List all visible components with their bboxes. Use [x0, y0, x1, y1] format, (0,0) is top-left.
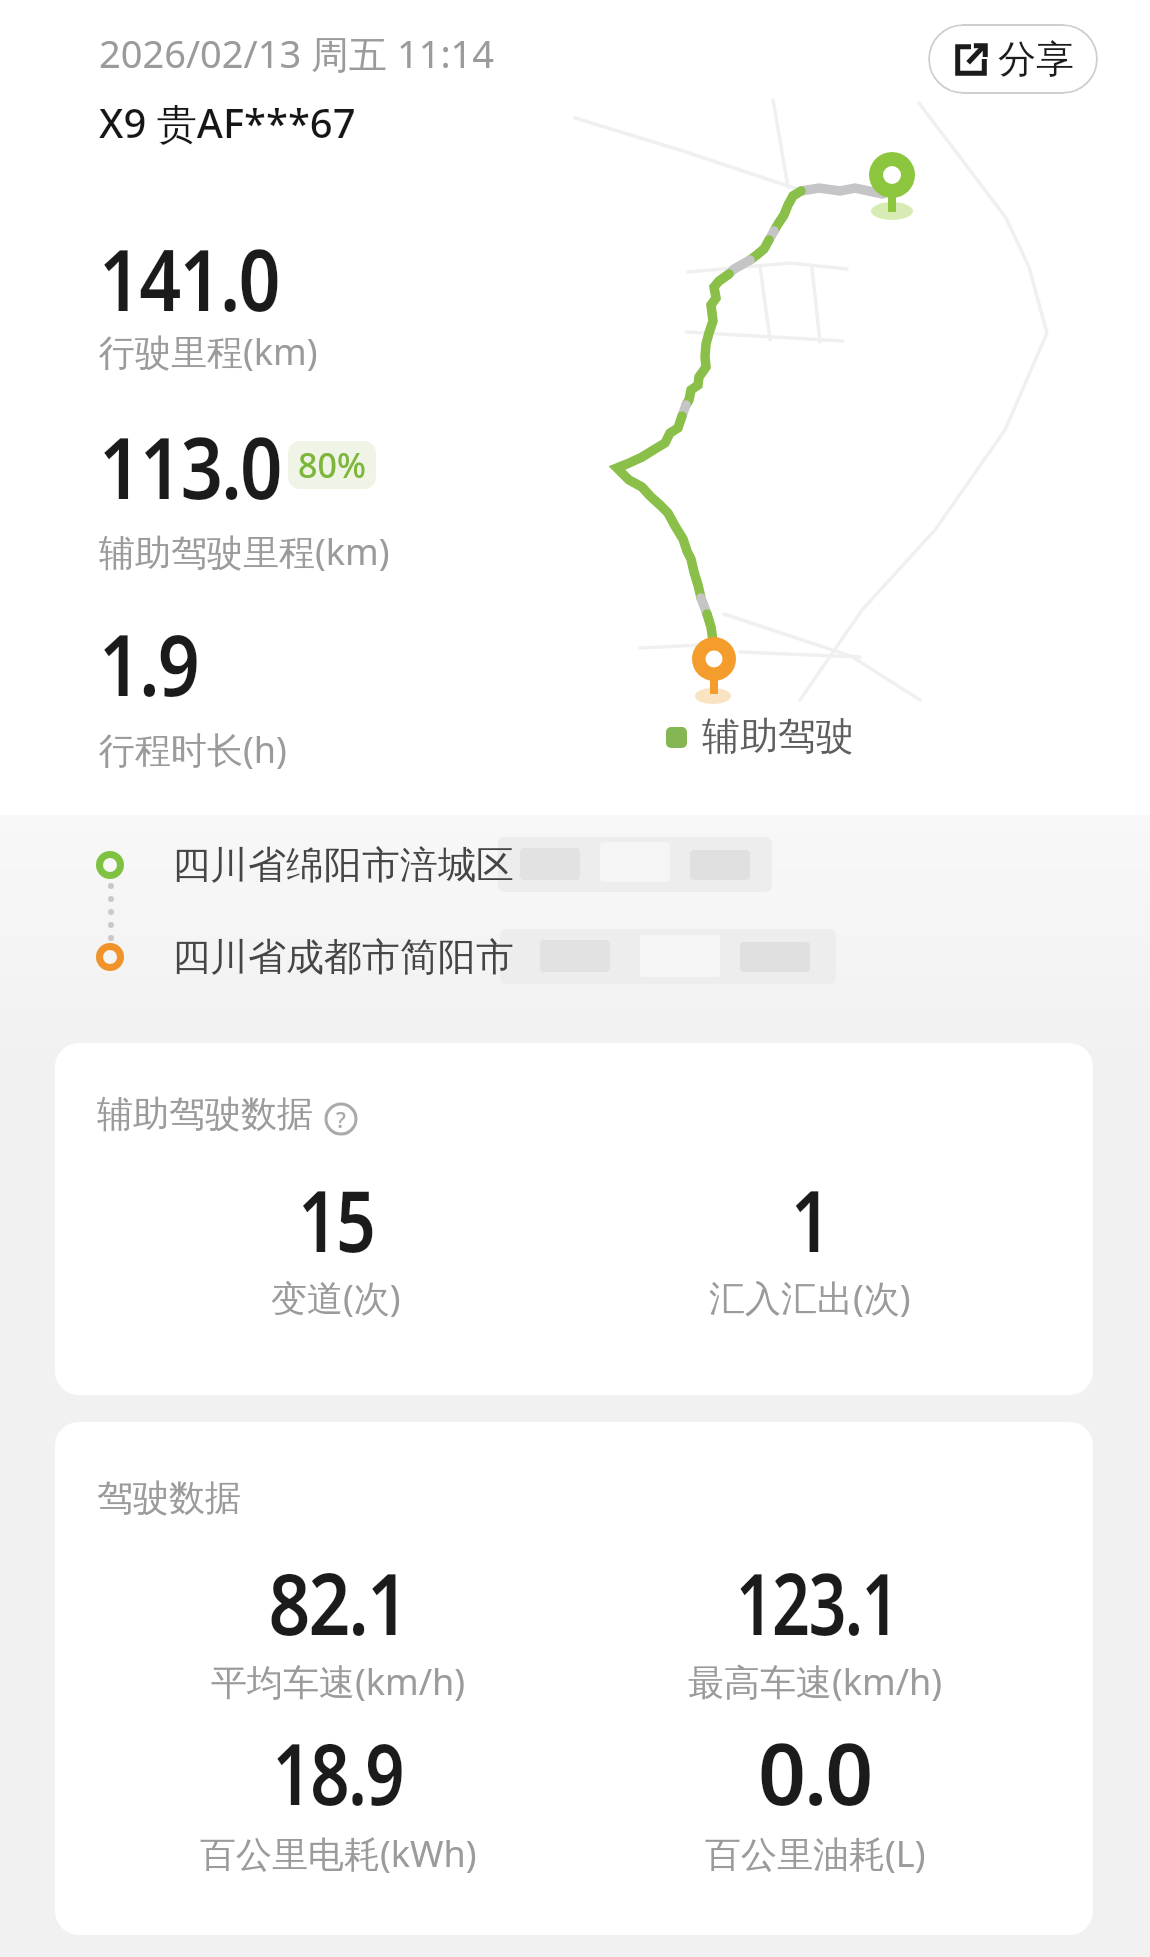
staticText: 15	[298, 1162, 375, 1276]
staticText: 辅助驾驶里程(km)	[99, 527, 390, 576]
staticText: 最高车速(km/h)	[688, 1657, 943, 1706]
staticText: 82.1	[268, 1545, 408, 1659]
staticText: 四川省成都市简阳市	[172, 933, 514, 981]
staticText: 18.9	[272, 1715, 404, 1829]
staticText: ?	[336, 1104, 346, 1134]
staticText: 1.9	[99, 606, 199, 720]
staticText: 驾驶数据	[97, 1475, 241, 1520]
staticText: 汇入汇出(次)	[709, 1273, 911, 1322]
staticText: 变道(次)	[271, 1273, 401, 1322]
staticText: 行驶里程(km)	[99, 327, 318, 376]
staticText: 百公里油耗(L)	[705, 1829, 926, 1878]
staticText: 2026/02/13 周五 11:14	[99, 27, 495, 79]
staticText: 行程时长(h)	[99, 725, 287, 774]
button[interactable]: 分享	[928, 24, 1098, 94]
staticText: 80%	[298, 442, 366, 488]
staticText: 辅助驾驶	[702, 712, 854, 760]
button[interactable]: ?	[324, 1102, 358, 1136]
staticText: X9 贵AF***67	[99, 95, 356, 150]
staticText: 分享	[998, 35, 1074, 83]
staticText: 0.0	[758, 1715, 872, 1829]
staticText: 平均车速(km/h)	[211, 1657, 466, 1706]
staticText: 百公里电耗(kWh)	[200, 1829, 477, 1878]
staticText: 四川省绵阳市涪城区	[172, 841, 514, 889]
staticText: 113.0	[99, 409, 281, 523]
staticText: 辅助驾驶数据	[97, 1091, 313, 1136]
staticText: 1	[791, 1162, 830, 1276]
staticText: 123.1	[736, 1545, 898, 1659]
staticText: 141.0	[99, 221, 279, 335]
